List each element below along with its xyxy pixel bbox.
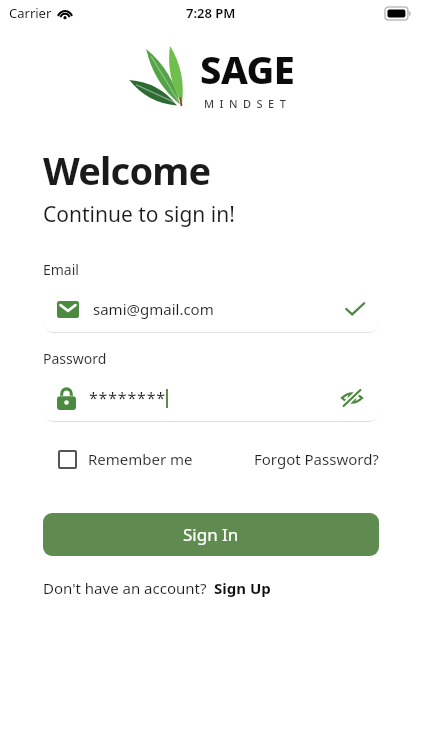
button[interactable]: Show password [339, 385, 365, 411]
staticText: SAGE [200, 43, 295, 95]
staticText: MINDSET [204, 96, 292, 111]
button[interactable]: Sign In [43, 513, 379, 556]
staticText: Sign In [183, 523, 239, 546]
staticText: Sign Up [214, 578, 271, 598]
staticText: sami@gmail.com [93, 299, 214, 319]
button[interactable]: Forgot Password? [254, 449, 379, 469]
staticText: Email [43, 260, 79, 279]
button[interactable]: Sign Up [214, 578, 271, 598]
staticText: Don't have an account? [43, 578, 207, 598]
staticText: Password [43, 349, 107, 368]
staticText: Continue to sign in! [43, 200, 235, 229]
button[interactable]: Remember me [58, 449, 193, 469]
button[interactable]: sami@gmail.com [43, 286, 379, 332]
button[interactable]: ******** [43, 375, 379, 421]
staticText: 7:28 PM [186, 4, 236, 22]
staticText: Remember me [88, 449, 193, 469]
staticText: Welcome [43, 144, 211, 196]
staticText: Carrier [9, 4, 52, 22]
staticText: ******** [89, 387, 166, 409]
staticText: Forgot Password? [254, 449, 379, 469]
